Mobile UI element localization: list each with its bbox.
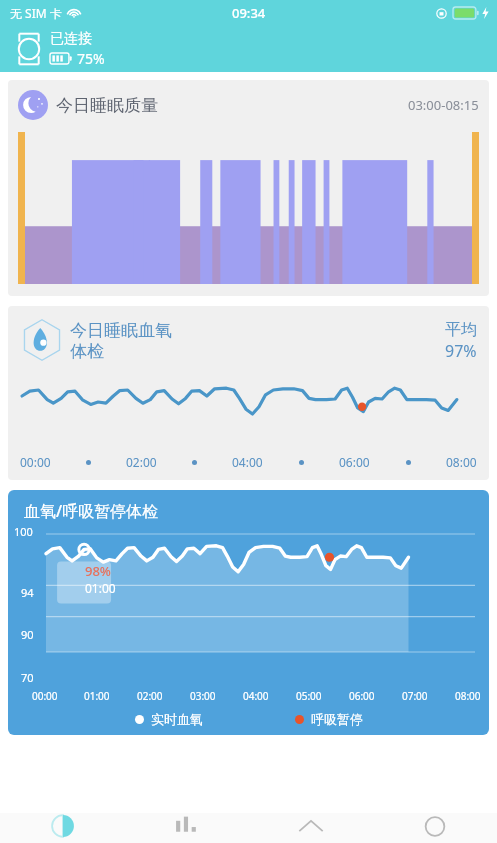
staticText: 08:00 (455, 689, 481, 703)
staticText: 09:34 (232, 4, 266, 22)
staticText: 00:00 (20, 454, 51, 470)
staticText: 00:00 (32, 689, 58, 703)
button[interactable]: 血氧/呼吸暂停体检 (8, 490, 489, 735)
button[interactable]: Dashboard (0, 813, 125, 843)
staticText: 100 (14, 524, 33, 539)
button[interactable]: 已连接 (0, 26, 497, 72)
staticText: 03:00 (190, 689, 216, 703)
staticText: 07:00 (402, 689, 428, 703)
button[interactable]: 今日睡眠质量 (8, 80, 489, 296)
staticText: 94 (21, 585, 34, 600)
staticText: 已连接 (50, 30, 92, 48)
staticText: 今日睡眠质量 (56, 95, 158, 116)
button[interactable]: 今日睡眠血氧 (8, 306, 489, 480)
staticText: 实时血氧 (151, 711, 203, 727)
staticText: 03:00-08:15 (408, 96, 479, 114)
staticText: 75% (77, 49, 105, 68)
staticText: 97% (445, 340, 477, 362)
staticText: 血氧/呼吸暂停体检 (24, 500, 159, 522)
staticText: 98% (85, 562, 111, 580)
staticText: 90 (21, 627, 34, 642)
staticText: 02:00 (126, 454, 157, 470)
staticText: 今日睡眠血氧 (70, 320, 172, 341)
staticText: 06:00 (349, 689, 375, 703)
staticText: 平均 (445, 320, 477, 340)
staticText: 01:00 (84, 689, 110, 703)
staticText: 05:00 (296, 689, 322, 703)
button[interactable]: Statistics (125, 813, 249, 843)
staticText: 70 (21, 670, 34, 685)
staticText: 08:00 (446, 454, 477, 470)
staticText: 01:00 (85, 580, 116, 596)
staticText: 04:00 (232, 454, 263, 470)
staticText: 06:00 (339, 454, 370, 470)
staticText: 体检 (70, 341, 104, 362)
staticText: 呼吸暂停 (311, 711, 363, 727)
staticText: 无 SIM 卡 (10, 5, 62, 21)
staticText: 02:00 (137, 689, 163, 703)
button[interactable]: Profile (373, 813, 497, 843)
staticText: 04:00 (243, 689, 269, 703)
button[interactable]: Home (249, 813, 373, 843)
